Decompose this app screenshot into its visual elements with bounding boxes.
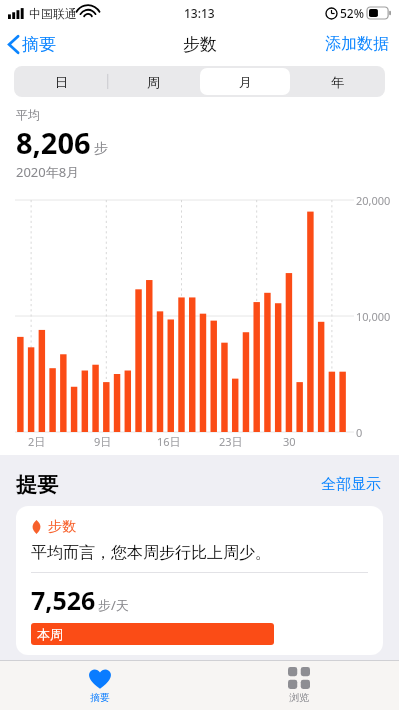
- button[interactable]: 周: [108, 68, 198, 95]
- staticText: 2日: [28, 434, 46, 449]
- staticText: 23日: [219, 434, 243, 449]
- staticText: 浏览: [289, 691, 309, 704]
- staticText: 52%: [340, 5, 364, 21]
- staticText: 月: [239, 74, 252, 90]
- staticText: 8,206: [16, 123, 91, 162]
- button[interactable]: 年: [292, 68, 382, 95]
- staticText: 13:13: [184, 5, 215, 21]
- staticText: 步数: [48, 518, 76, 536]
- staticText: 16日: [157, 434, 181, 449]
- staticText: 中国联通: [29, 6, 77, 21]
- staticText: 摘要: [90, 691, 110, 704]
- staticText: 步/天: [98, 596, 129, 614]
- staticText: 添加数据: [325, 34, 389, 54]
- staticText: 步: [94, 140, 108, 158]
- staticText: 7,526: [31, 583, 96, 617]
- button[interactable]: 摘要: [0, 30, 64, 59]
- button[interactable]: 步数: [16, 506, 383, 655]
- button[interactable]: 添加数据: [315, 30, 399, 58]
- staticText: 日: [55, 74, 68, 90]
- staticText: 周: [147, 74, 160, 90]
- staticText: 平均而言，您本周步行比上周少。: [31, 543, 271, 563]
- staticText: 全部显示: [321, 475, 381, 494]
- staticText: 20,000: [356, 193, 391, 208]
- button[interactable]: 摘要: [0, 661, 199, 710]
- staticText: 30: [283, 434, 296, 449]
- staticText: 本周: [37, 626, 63, 642]
- staticText: 摘要: [22, 34, 56, 55]
- staticText: 平均: [16, 107, 40, 122]
- button[interactable]: 日: [17, 68, 106, 95]
- staticText: 10,000: [356, 309, 391, 324]
- staticText: 步数: [183, 34, 217, 55]
- button[interactable]: 浏览: [199, 661, 399, 710]
- staticText: 9日: [94, 434, 112, 449]
- staticText: 2020年8月: [16, 163, 80, 181]
- button[interactable]: 全部显示: [317, 471, 385, 498]
- staticText: 0: [356, 425, 363, 440]
- staticText: 年: [331, 74, 344, 90]
- staticText: 提要: [16, 472, 58, 498]
- button[interactable]: 月: [200, 68, 290, 95]
